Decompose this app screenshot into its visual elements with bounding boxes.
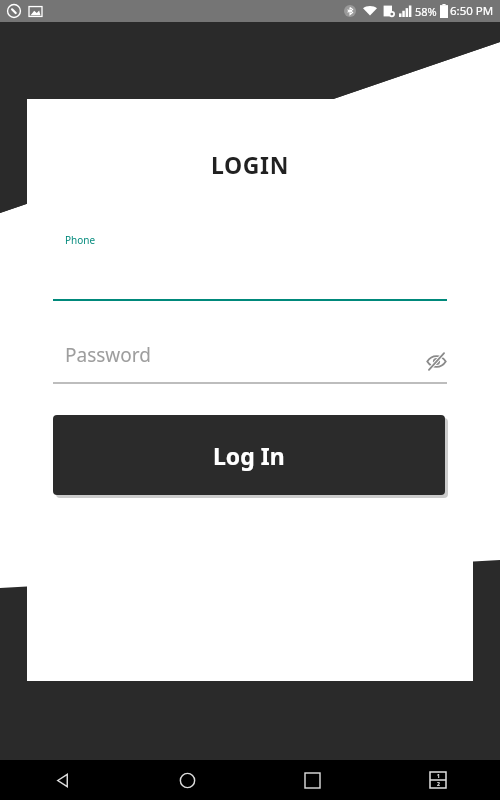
staticText: 6:50 PM <box>450 3 494 19</box>
staticText: LOGIN <box>27 149 473 180</box>
button[interactable]: Log In <box>53 415 445 495</box>
staticText: Phone <box>65 233 96 247</box>
button[interactable]: Recent apps <box>250 760 375 800</box>
staticText: 58% <box>415 4 437 19</box>
button[interactable]: Back <box>0 760 125 800</box>
button[interactable]: Home <box>125 760 250 800</box>
button[interactable]: Split screen <box>375 760 500 800</box>
button[interactable]: Show password <box>421 346 451 376</box>
button[interactable]: Phone <box>27 231 473 301</box>
button[interactable]: Password <box>27 342 473 384</box>
staticText: 2 <box>437 781 440 788</box>
staticText: Log In <box>213 440 285 471</box>
staticText: 1 <box>437 773 440 780</box>
staticText: Password <box>65 342 151 368</box>
